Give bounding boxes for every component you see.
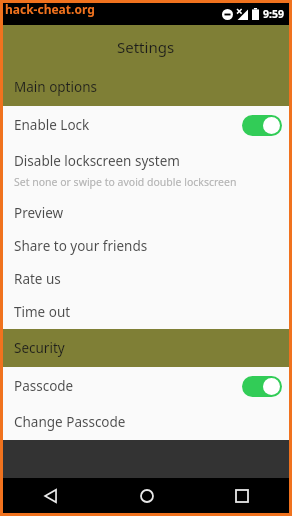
staticText: Settings [117, 37, 175, 57]
button[interactable]: Change Passcode [3, 405, 289, 438]
staticText: Time out [14, 303, 71, 321]
staticText: Preview [14, 204, 64, 222]
staticText: hack-cheat.org [5, 1, 95, 17]
button[interactable]: Disable lockscreen system [3, 144, 289, 196]
staticText: Security [14, 339, 65, 357]
button[interactable]: Recent apps [194, 478, 289, 513]
staticText: Set none or swipe to avoid double locksc… [14, 175, 237, 189]
button[interactable]: Rate us [3, 262, 289, 295]
staticText: Passcode [14, 377, 74, 395]
button[interactable]: Passcode [3, 367, 289, 405]
staticText: Disable lockscreen system [14, 152, 180, 170]
button[interactable]: Preview [3, 196, 289, 229]
button[interactable]: Share to your friends [3, 229, 289, 262]
button[interactable]: Home [99, 478, 194, 513]
button[interactable]: Enable Lock [3, 106, 289, 144]
staticText: Main options [14, 78, 97, 96]
staticText: Enable Lock [14, 116, 90, 134]
staticText: Share to your friends [14, 237, 148, 255]
staticText: Rate us [14, 270, 61, 288]
staticText: 9:59 [263, 7, 284, 21]
button[interactable]: Back [3, 478, 99, 513]
button[interactable]: Time out [3, 295, 289, 329]
staticText: Change Passcode [14, 413, 126, 431]
